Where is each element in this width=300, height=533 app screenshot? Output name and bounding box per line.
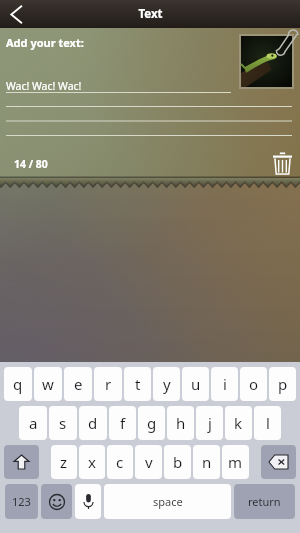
button[interactable]: Backspace	[261, 445, 296, 479]
staticText: q	[13, 374, 23, 394]
button[interactable]: o	[240, 367, 267, 401]
button[interactable]: j	[196, 406, 223, 440]
staticText: h	[176, 413, 186, 433]
staticText: e	[74, 374, 83, 394]
button[interactable]: q	[4, 367, 32, 401]
button[interactable]: t	[124, 367, 151, 401]
button[interactable]: Attached photo	[241, 36, 292, 87]
button[interactable]: m	[222, 445, 249, 479]
button[interactable]: Back	[0, 0, 32, 28]
button[interactable]: a	[19, 406, 47, 440]
button[interactable]: b	[164, 445, 191, 479]
staticText: o	[249, 374, 259, 394]
button[interactable]: y	[153, 367, 180, 401]
button[interactable]: s	[49, 406, 77, 440]
button[interactable]: i	[211, 367, 238, 401]
staticText: k	[234, 413, 243, 433]
staticText: c	[116, 452, 124, 472]
button[interactable]: n	[193, 445, 220, 479]
staticText: m	[228, 452, 243, 472]
button[interactable]: g	[138, 406, 165, 440]
staticText: Wac! Wac! Wac!	[6, 79, 82, 93]
staticText: u	[191, 374, 201, 394]
button[interactable]: k	[225, 406, 252, 440]
staticText: l	[266, 413, 270, 433]
staticText: space	[153, 494, 183, 509]
button[interactable]: h	[167, 406, 194, 440]
staticText: Text	[138, 6, 163, 22]
button[interactable]: u	[182, 367, 209, 401]
button[interactable]: d	[79, 406, 107, 440]
staticText: g	[147, 413, 157, 433]
button[interactable]: Delete	[268, 149, 296, 177]
staticText: v	[145, 452, 153, 472]
staticText: i	[223, 374, 227, 394]
staticText: return	[248, 494, 281, 509]
staticText: j	[208, 413, 212, 433]
staticText: p	[278, 374, 288, 394]
staticText: r	[105, 374, 112, 394]
button[interactable]: z	[51, 445, 77, 479]
button[interactable]: p	[269, 367, 296, 401]
staticText: y	[163, 374, 171, 394]
button[interactable]: Shift	[4, 445, 39, 479]
button[interactable]: w	[34, 367, 62, 401]
staticText: f	[120, 413, 126, 433]
staticText: s	[59, 413, 67, 433]
button[interactable]: c	[107, 445, 133, 479]
button[interactable]: v	[135, 445, 162, 479]
staticText: n	[202, 452, 212, 472]
staticText: t	[135, 374, 141, 394]
staticText: Add your text:	[6, 35, 84, 50]
staticText: d	[88, 413, 98, 433]
staticText: z	[60, 452, 68, 472]
staticText: w	[42, 374, 54, 394]
staticText: 14 / 80	[14, 157, 48, 171]
button[interactable]: f	[109, 406, 136, 440]
staticText: x	[88, 452, 96, 472]
staticText: 123	[12, 494, 31, 509]
staticText: a	[29, 413, 38, 433]
button[interactable]: 123	[5, 484, 38, 519]
button[interactable]: r	[94, 367, 122, 401]
button[interactable]: Dictation	[75, 484, 101, 519]
button[interactable]: l	[254, 406, 281, 440]
button[interactable]: return	[234, 484, 295, 519]
button[interactable]: Emoji	[41, 484, 72, 519]
button[interactable]: e	[64, 367, 92, 401]
button[interactable]: x	[79, 445, 105, 479]
button[interactable]: space	[104, 484, 231, 519]
staticText: b	[173, 452, 183, 472]
